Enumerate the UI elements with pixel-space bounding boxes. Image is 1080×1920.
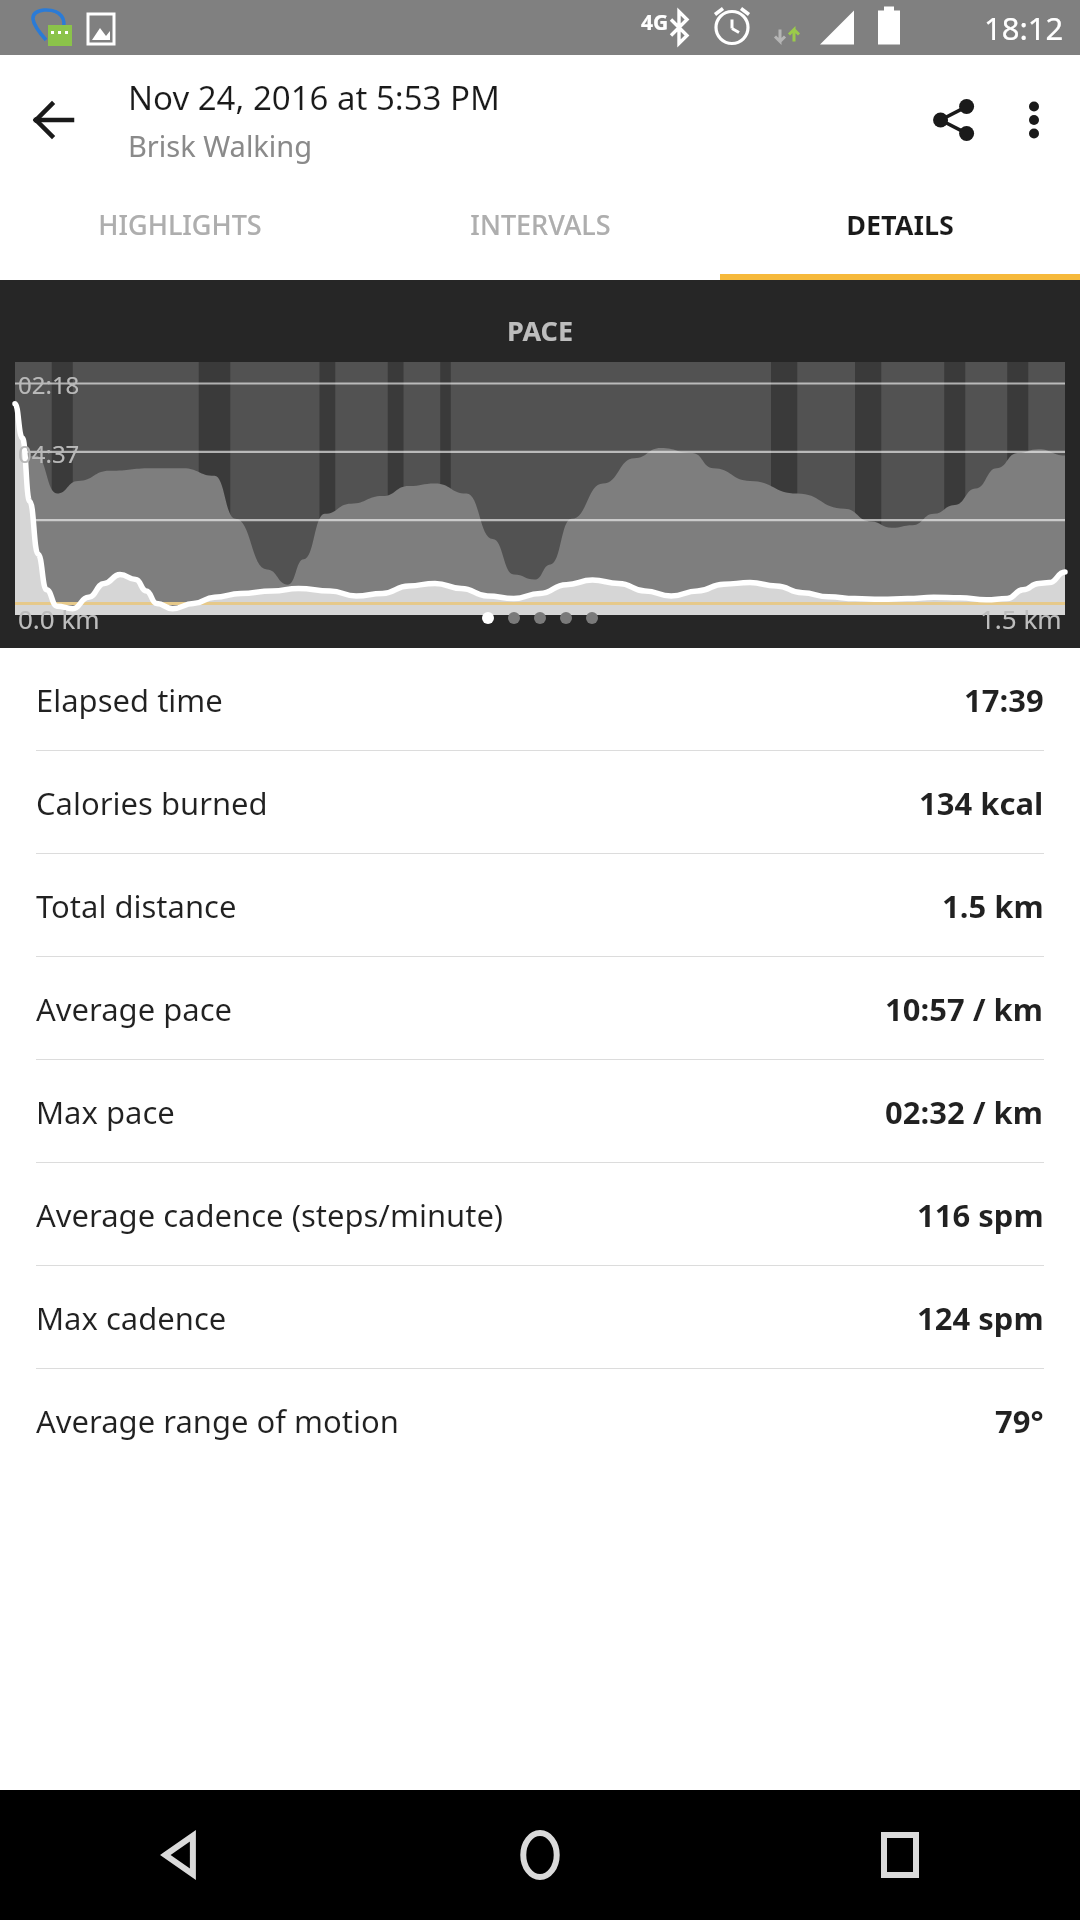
- button[interactable]: Max cadence: [0, 1266, 1080, 1369]
- staticText: 10:57 / km: [885, 988, 1044, 1030]
- staticText: HIGHLIGHTS: [98, 206, 262, 243]
- button[interactable]: Average pace: [0, 957, 1080, 1060]
- staticText: 134 kcal: [919, 782, 1044, 824]
- button[interactable]: Average cadence (steps/minute): [0, 1163, 1080, 1266]
- button[interactable]: Back: [0, 1790, 360, 1920]
- staticText: INTERVALS: [470, 206, 611, 243]
- staticText: Max cadence: [36, 1297, 917, 1339]
- staticText: 124 spm: [917, 1297, 1044, 1339]
- button[interactable]: Recent apps: [720, 1790, 1080, 1920]
- button[interactable]: DETAILS: [720, 185, 1080, 280]
- button[interactable]: Max pace: [0, 1060, 1080, 1163]
- staticText: Elapsed time: [36, 679, 964, 721]
- staticText: PACE: [507, 312, 574, 349]
- staticText: Average range of motion: [36, 1400, 995, 1442]
- staticText: 79°: [995, 1400, 1044, 1442]
- staticText: 18:12: [984, 7, 1064, 49]
- staticText: Average pace: [36, 988, 885, 1030]
- staticText: 02:32 / km: [885, 1091, 1044, 1133]
- staticText: DETAILS: [846, 206, 954, 243]
- button[interactable]: Total distance: [0, 854, 1080, 957]
- button[interactable]: HIGHLIGHTS: [0, 185, 360, 280]
- staticText: Calories burned: [36, 782, 919, 824]
- button[interactable]: Average range of motion: [0, 1369, 1080, 1472]
- staticText: 17:39: [964, 679, 1044, 721]
- staticText: Max pace: [36, 1091, 885, 1133]
- staticText: 116 spm: [917, 1194, 1044, 1236]
- staticText: Brisk Walking: [128, 126, 313, 165]
- button[interactable]: Share: [912, 78, 996, 162]
- button[interactable]: Back: [16, 84, 88, 156]
- staticText: Nov 24, 2016 at 5:53 PM: [128, 75, 500, 120]
- button[interactable]: Elapsed time: [0, 648, 1080, 751]
- staticText: 0.0 km: [18, 601, 100, 636]
- staticText: Total distance: [36, 885, 942, 927]
- button[interactable]: More options: [996, 78, 1072, 162]
- staticText: 4G: [641, 8, 669, 37]
- button[interactable]: Home: [360, 1790, 720, 1920]
- staticText: 1.5 km: [980, 601, 1062, 636]
- staticText: 02:18: [18, 368, 80, 401]
- button[interactable]: INTERVALS: [360, 185, 720, 280]
- staticText: 04:37: [18, 437, 80, 470]
- button[interactable]: Calories burned: [0, 751, 1080, 854]
- staticText: Average cadence (steps/minute): [36, 1194, 917, 1236]
- staticText: 1.5 km: [942, 885, 1044, 927]
